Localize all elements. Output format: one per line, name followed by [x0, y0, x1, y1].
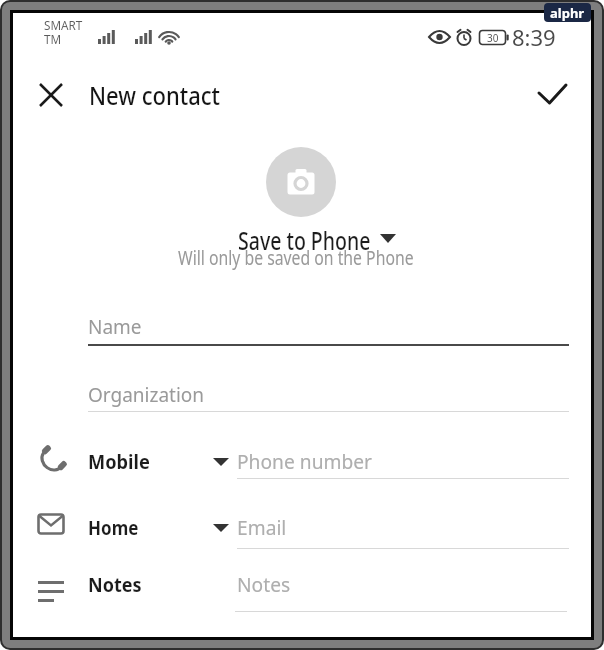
staticText: SMART TM — [44, 16, 83, 48]
staticText: alphr — [550, 4, 585, 22]
button[interactable] — [228, 218, 423, 252]
button[interactable] — [37, 445, 67, 475]
button[interactable] — [83, 508, 233, 544]
staticText: Will only be saved on the Phone — [178, 245, 414, 271]
staticText: Save to Phone — [238, 223, 371, 257]
staticText: Notes — [237, 571, 291, 598]
staticText: Email — [237, 514, 287, 541]
staticText: Organization — [88, 381, 205, 408]
staticText: 30 — [487, 31, 499, 45]
staticText: New contact — [89, 78, 220, 112]
staticText: Mobile — [88, 448, 150, 475]
staticText: 8:39 — [512, 22, 556, 52]
staticText: Phone number — [237, 448, 372, 475]
staticText: Name — [88, 313, 142, 340]
button[interactable] — [525, 70, 581, 118]
staticText: Home — [88, 514, 139, 541]
button[interactable] — [31, 75, 71, 115]
button[interactable] — [266, 147, 336, 217]
button[interactable] — [83, 441, 233, 477]
staticText: Notes — [88, 571, 142, 598]
